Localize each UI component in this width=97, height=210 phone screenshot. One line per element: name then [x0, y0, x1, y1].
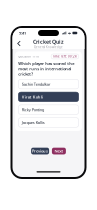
button[interactable]: Previous: [31, 148, 49, 154]
button[interactable]: Ricky Ponting: [18, 105, 79, 114]
button[interactable]: Back: [15, 39, 23, 48]
staticText: Next: [54, 148, 63, 154]
button[interactable]: Virat Kohli: [18, 92, 79, 102]
button[interactable]: Jacques Kallis: [18, 118, 79, 127]
staticText: Cricket Quiz: [33, 38, 64, 45]
staticText: Time left: 00:24: [53, 55, 77, 58]
staticText: Virat Kohli: [22, 94, 43, 99]
staticText: Which player has scored the most runs in…: [18, 61, 74, 77]
staticText: Previous: [32, 148, 48, 154]
staticText: Sachin Tendulkar: [22, 81, 51, 87]
staticText: Ricky Ponting: [22, 107, 44, 112]
button[interactable]: Next: [52, 148, 66, 154]
staticText: 9:41: [19, 30, 26, 36]
button[interactable]: Sachin Tendulkar: [18, 79, 79, 89]
staticText: Question 1/10: [18, 55, 39, 58]
staticText: Jacques Kallis: [22, 120, 45, 125]
staticText: General Knowledge: [34, 45, 63, 49]
